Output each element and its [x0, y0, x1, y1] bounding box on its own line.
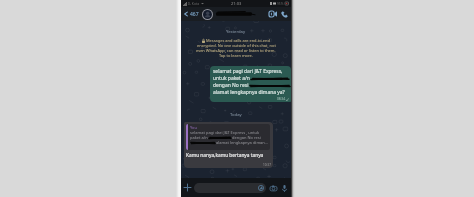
staticText: even WhatsApp, can read or listen to the…: [196, 48, 276, 53]
staticText: Today: [230, 112, 242, 118]
button[interactable]: Voice message: [279, 183, 289, 193]
staticText: Kamu nanya,kamu bertanya tanya: [186, 152, 264, 159]
staticText: encrypted. No one outside of this chat, …: [197, 43, 276, 48]
staticText: dengan No resi: [231, 135, 261, 140]
staticText: selamat pagi dari J&T Express , untuk: [190, 130, 260, 135]
staticText: IL Kota: [188, 1, 200, 6]
button[interactable]: Camera: [268, 183, 278, 193]
staticText: alamat lengkapnya dimana ya?: [213, 89, 285, 96]
button[interactable]: Video call: [268, 9, 278, 19]
button[interactable]: You: [184, 122, 273, 168]
button[interactable]: Voice call: [279, 9, 289, 19]
staticText: 08:34: [277, 97, 285, 101]
button[interactable]: Attach: [182, 182, 193, 193]
staticText: 95%: [277, 2, 284, 6]
staticText: Yesterday: [226, 29, 246, 35]
staticText: paket a/n: [190, 135, 208, 140]
staticText: dengan No resi: [213, 82, 249, 89]
staticText: 21:03: [231, 1, 242, 6]
button[interactable]: selamat pagi dari J&T Express,: [210, 66, 291, 102]
staticText: 10:37: [263, 163, 271, 167]
button[interactable]: [194, 183, 266, 193]
staticText: 467: [190, 11, 199, 18]
staticText: untuk paket a/n: [213, 75, 250, 82]
staticText: alamat lengkapnya diman...: [215, 140, 269, 145]
staticText: Tap to learn more.: [219, 53, 253, 58]
staticText: You: [190, 125, 197, 130]
button[interactable]: Contact photo: [202, 9, 213, 20]
button[interactable]: 467: [181, 7, 200, 21]
staticText: selamat pagi dari J&T Express,: [213, 68, 283, 75]
staticText: Messages and calls are end-to-end: [206, 38, 270, 43]
